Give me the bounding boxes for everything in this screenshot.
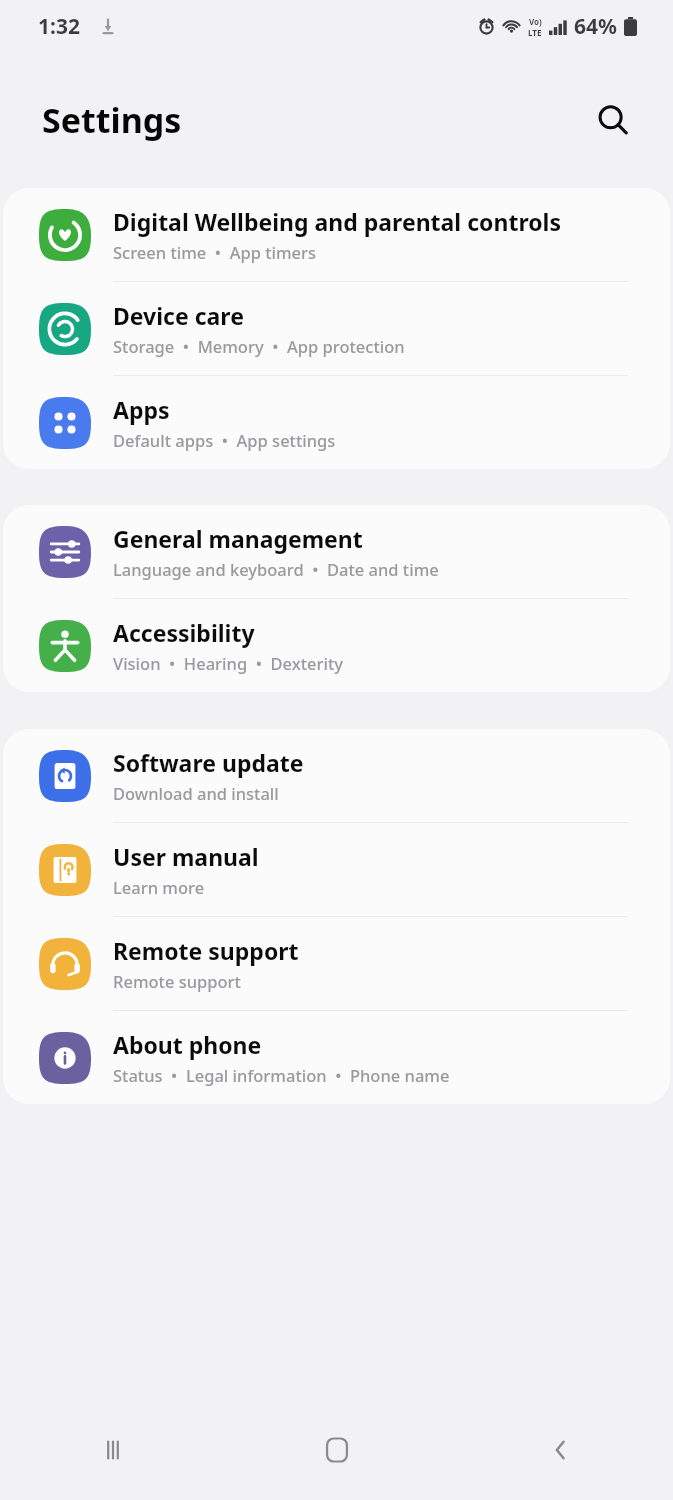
- staticText: 64%: [574, 12, 617, 41]
- button[interactable]: Back: [449, 1400, 673, 1500]
- button[interactable]: Software update: [3, 729, 670, 823]
- staticText: Learn more: [113, 876, 205, 898]
- staticText: General management: [113, 523, 363, 554]
- button[interactable]: Remote support: [3, 917, 670, 1011]
- button[interactable]: About phone: [3, 1011, 670, 1104]
- staticText: Vo): [529, 16, 542, 27]
- staticText: Screen time • App timers: [113, 241, 317, 263]
- button[interactable]: Search: [589, 96, 637, 144]
- button[interactable]: General management: [3, 505, 670, 599]
- staticText: Default apps • App settings: [113, 429, 336, 451]
- button[interactable]: Recent apps: [0, 1400, 225, 1500]
- button[interactable]: Accessibility: [3, 599, 670, 692]
- staticText: Digital Wellbeing and parental controls: [113, 206, 561, 237]
- button[interactable]: User manual: [3, 823, 670, 917]
- staticText: Apps: [113, 394, 170, 425]
- button[interactable]: Device care: [3, 282, 670, 376]
- button[interactable]: Apps: [3, 376, 670, 469]
- staticText: Language and keyboard • Date and time: [113, 558, 439, 580]
- staticText: Accessibility: [113, 617, 255, 648]
- button[interactable]: Digital Wellbeing and parental controls: [3, 188, 670, 282]
- staticText: Storage • Memory • App protection: [113, 335, 405, 357]
- staticText: Remote support: [113, 970, 241, 992]
- button[interactable]: Home: [225, 1400, 449, 1500]
- staticText: User manual: [113, 841, 259, 872]
- staticText: Device care: [113, 300, 244, 331]
- staticText: Settings: [42, 97, 182, 143]
- staticText: Vision • Hearing • Dexterity: [113, 652, 343, 674]
- staticText: About phone: [113, 1029, 262, 1060]
- staticText: Software update: [113, 747, 304, 778]
- staticText: Remote support: [113, 935, 299, 966]
- staticText: 1:32: [38, 12, 80, 41]
- staticText: Download and install: [113, 782, 279, 804]
- staticText: LTE: [528, 27, 542, 38]
- staticText: Status • Legal information • Phone name: [113, 1064, 450, 1086]
